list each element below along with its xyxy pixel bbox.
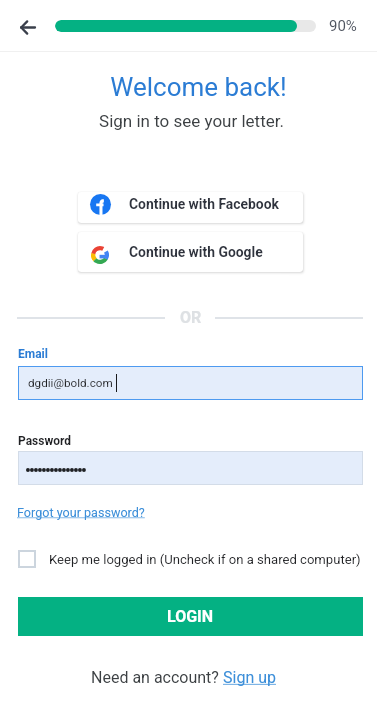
staticText: Email bbox=[18, 347, 48, 361]
button[interactable]: Keep me logged in (Uncheck if on a share… bbox=[18, 549, 361, 569]
staticText: Continue with Facebook bbox=[129, 196, 279, 212]
staticText: Welcome back! bbox=[10, 72, 377, 102]
staticText: dgdii@bold.com bbox=[28, 376, 113, 390]
staticText: Sign in to see your letter. bbox=[3, 111, 377, 131]
staticText: Continue with Google bbox=[129, 244, 263, 260]
staticText: 90% bbox=[329, 17, 357, 35]
staticText: Keep me logged in (Uncheck if on a share… bbox=[49, 552, 361, 567]
staticText: LOGIN bbox=[167, 607, 214, 626]
staticText: OR bbox=[180, 308, 202, 327]
button[interactable]: Back bbox=[8, 8, 47, 47]
button[interactable]: Continue with Facebook bbox=[78, 192, 303, 223]
staticText: Need an account? bbox=[91, 668, 223, 687]
button[interactable]: Forgot your password? bbox=[17, 505, 145, 520]
staticText: Sign up bbox=[223, 668, 276, 687]
button[interactable]: LOGIN bbox=[18, 597, 363, 636]
staticText: Forgot your password? bbox=[17, 505, 145, 520]
button[interactable] bbox=[18, 451, 363, 485]
button[interactable]: dgdii@bold.com bbox=[18, 366, 363, 400]
staticText: Password bbox=[18, 434, 72, 448]
button[interactable]: Sign up bbox=[223, 668, 276, 687]
button[interactable]: Continue with Google bbox=[78, 232, 303, 272]
